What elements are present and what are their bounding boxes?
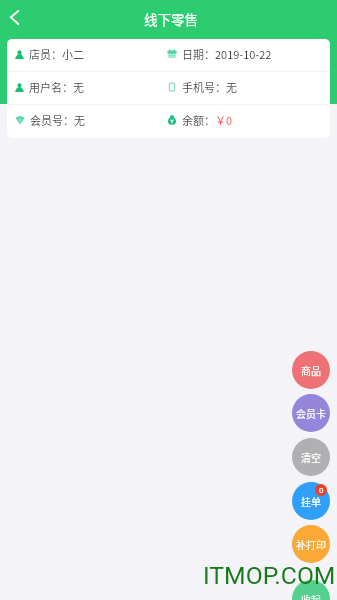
- staticText: ITMOP.COM: [203, 561, 336, 590]
- staticText: 店员：: [29, 46, 62, 62]
- staticText: 无: [73, 79, 84, 95]
- staticText: 挂单: [301, 494, 321, 508]
- button[interactable]: 收起: [292, 580, 330, 600]
- staticText: 手机号：: [182, 79, 226, 95]
- staticText: 用户名：: [29, 79, 73, 95]
- staticText: 余额：: [182, 112, 215, 128]
- staticText: 日期：: [182, 46, 215, 62]
- staticText: 收起: [301, 592, 321, 600]
- staticText: 商品: [301, 363, 321, 377]
- staticText: 清空: [301, 450, 321, 464]
- staticText: ￥0: [215, 112, 233, 128]
- staticText: 无: [74, 112, 85, 128]
- button[interactable]: 会员卡: [292, 394, 330, 432]
- staticText: 会员号：: [30, 112, 74, 128]
- staticText: 无: [226, 79, 237, 95]
- button[interactable]: 清空: [292, 438, 330, 476]
- button[interactable]: 补打印: [292, 525, 330, 563]
- staticText: 2019-10-22: [215, 46, 272, 62]
- staticText: 补打印: [296, 537, 326, 551]
- button[interactable]: 0: [315, 484, 327, 496]
- staticText: 线下零售: [144, 9, 198, 29]
- staticText: 0: [319, 486, 324, 495]
- button[interactable]: Back: [3, 3, 33, 33]
- staticText: 小二: [62, 46, 84, 62]
- button[interactable]: 商品: [292, 351, 330, 389]
- staticText: 会员卡: [296, 406, 326, 420]
- button[interactable]: 挂单: [292, 482, 330, 520]
